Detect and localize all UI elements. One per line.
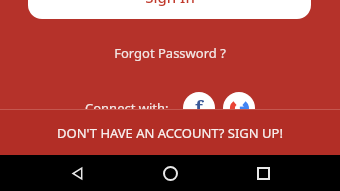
button[interactable]: Home [152,155,188,191]
staticText: Forgot Password ? [114,44,226,62]
staticText: Sign In [145,0,195,7]
button[interactable]: DON'T HAVE AN ACCOUNT? SIGN UP! [0,110,340,155]
staticText: DON'T HAVE AN ACCOUNT? SIGN UP! [57,124,283,142]
button[interactable]: Sign In [28,0,311,19]
staticText: f [195,95,203,121]
button[interactable]: Connect with Facebook [183,92,215,124]
button[interactable]: Connect with Google [223,92,255,124]
button[interactable]: Forgot Password ? [0,42,340,64]
staticText: Connect with: [85,99,169,117]
button[interactable]: Recent apps [245,155,281,191]
button[interactable]: Back [59,155,95,191]
